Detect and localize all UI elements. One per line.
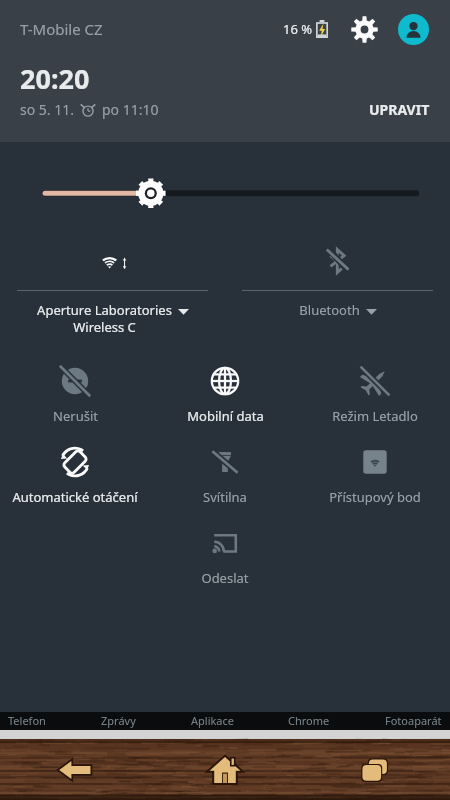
staticText: 16 % <box>283 20 313 38</box>
button[interactable]: Mobilní data <box>150 354 300 435</box>
button[interactable]: Svítilna <box>150 435 300 516</box>
button[interactable]: Automatické otáčení <box>0 435 150 516</box>
staticText: Automatické otáčení <box>12 488 138 506</box>
staticText: Zprávy <box>101 713 136 728</box>
staticText: Odeslat <box>201 569 249 587</box>
staticText: T-Mobile CZ <box>20 19 103 39</box>
staticText: po 11:10 <box>102 100 159 119</box>
button[interactable]: Aperture Laboratories Wireless C <box>0 232 225 350</box>
button[interactable]: Odeslat <box>150 516 300 597</box>
staticText: Bluetooth <box>299 301 360 319</box>
button[interactable]: Home <box>150 739 300 800</box>
staticText: Telefon <box>8 713 46 728</box>
staticText: so 5. 11. <box>20 100 74 119</box>
button[interactable]: User account <box>396 12 430 46</box>
staticText: Nerušit <box>53 407 98 425</box>
button[interactable]: Bluetooth <box>225 232 450 350</box>
staticText: 20:20 <box>20 60 90 97</box>
staticText: Chrome <box>288 713 330 728</box>
staticText: Přístupový bod <box>329 488 421 506</box>
staticText: Aperture Laboratories Wireless C <box>37 301 172 336</box>
staticText: Aplikace <box>191 713 234 728</box>
staticText: Fotoaparát <box>385 713 442 728</box>
button[interactable]: Back <box>0 739 150 800</box>
staticText: UPRAVIT <box>369 100 430 119</box>
button[interactable]: UPRAVIT <box>365 96 434 123</box>
staticText: Mobilní data <box>187 407 264 425</box>
button[interactable]: Nerušit <box>0 354 150 435</box>
button[interactable]: Settings <box>348 13 380 45</box>
button[interactable]: Přístupový bod <box>300 435 450 516</box>
button[interactable]: Recent apps <box>300 739 450 800</box>
button[interactable]: Brightness <box>0 142 450 232</box>
staticText: Režim Letadlo <box>332 407 418 425</box>
button[interactable]: Režim Letadlo <box>300 354 450 435</box>
staticText: Svítilna <box>203 488 247 506</box>
